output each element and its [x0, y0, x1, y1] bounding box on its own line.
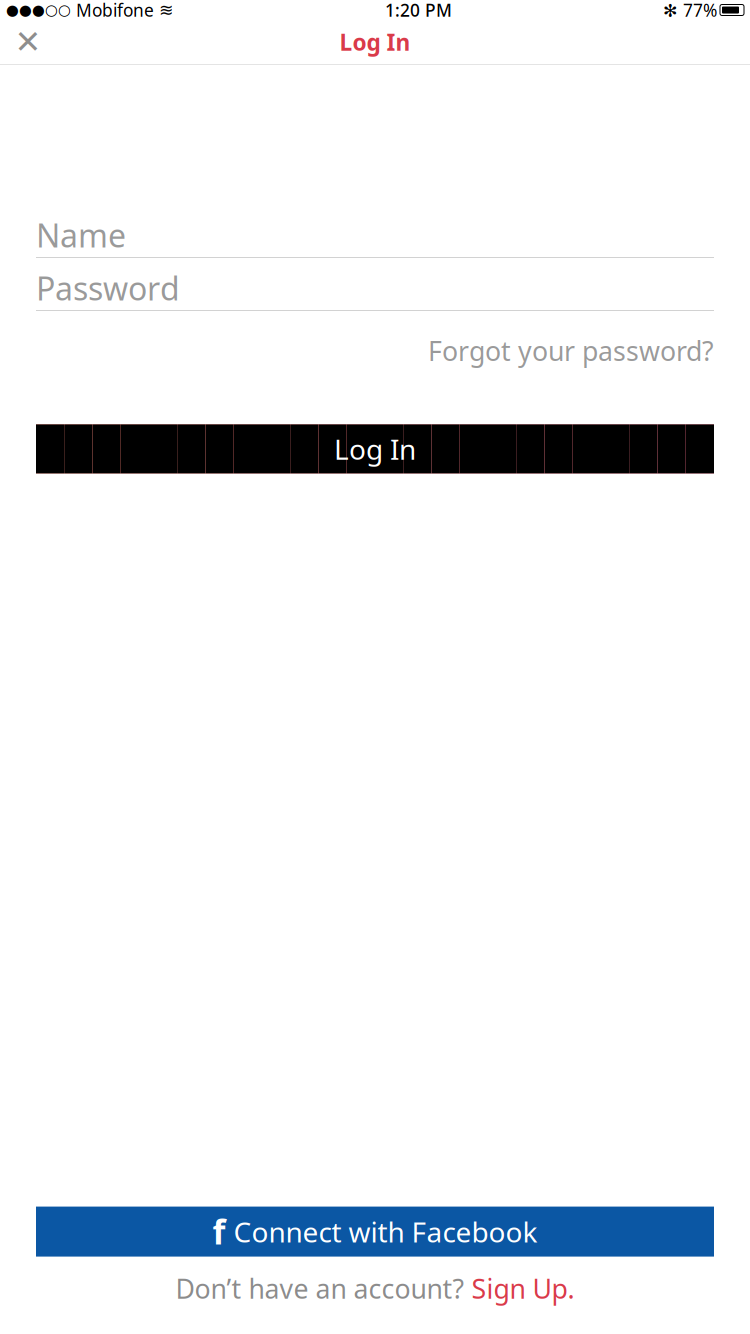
staticText: Password [36, 267, 180, 309]
staticText: ●●●○○ [6, 2, 71, 18]
staticText: f [212, 1209, 225, 1254]
staticText: Mobifone [71, 0, 159, 21]
staticText: ≋ [159, 0, 174, 20]
staticText: 1:20 PM [385, 0, 452, 21]
staticText: Log In [334, 430, 416, 467]
staticText: Sign Up. [471, 1271, 574, 1306]
button[interactable]: Log In [36, 424, 714, 473]
staticText: Forgot your password? [428, 333, 714, 368]
staticText: Name [36, 214, 126, 256]
staticText: ✻ 77% [663, 0, 717, 21]
staticText: Don’t have an account? [175, 1271, 471, 1306]
button[interactable]: f [36, 1207, 714, 1257]
staticText: ✕ [14, 24, 41, 60]
staticText: Connect with Facebook [233, 1213, 537, 1250]
staticText: Log In [339, 27, 410, 57]
button[interactable]: Don’t have an account? [36, 1257, 714, 1320]
button[interactable]: Close [6, 20, 50, 64]
button[interactable]: Forgot your password? [428, 325, 714, 376]
